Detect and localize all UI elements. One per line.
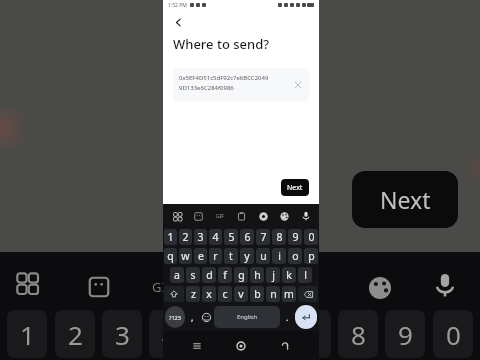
button[interactable]: f bbox=[218, 267, 232, 283]
button[interactable]: Voice input bbox=[298, 208, 314, 224]
button[interactable]: 8 bbox=[272, 229, 286, 245]
staticText: y bbox=[244, 249, 250, 263]
button[interactable]: g bbox=[234, 267, 248, 283]
staticText: r bbox=[213, 249, 218, 263]
button[interactable]: Home bbox=[231, 336, 251, 356]
staticText: n bbox=[270, 287, 277, 301]
staticText: 7 bbox=[260, 230, 267, 244]
button[interactable]: GIF bbox=[212, 208, 228, 224]
staticText: c bbox=[222, 287, 228, 301]
button[interactable]: Apps bbox=[169, 208, 185, 224]
button[interactable]: p bbox=[304, 248, 318, 264]
staticText: o bbox=[292, 249, 299, 263]
staticText: ?123 bbox=[169, 314, 181, 321]
button[interactable]: 6 bbox=[240, 229, 254, 245]
button[interactable]: t bbox=[224, 248, 238, 264]
staticText: 0 bbox=[446, 317, 461, 352]
button[interactable]: l bbox=[298, 267, 312, 283]
staticText: j bbox=[272, 268, 275, 282]
staticText: g bbox=[238, 268, 245, 282]
staticText: 3 bbox=[197, 230, 204, 244]
staticText: 7 bbox=[304, 317, 319, 352]
button[interactable]: Clear bbox=[292, 79, 304, 91]
button[interactable]: Backspace bbox=[298, 286, 318, 302]
button[interactable]: Clipboard bbox=[233, 208, 249, 224]
button[interactable]: 9 bbox=[288, 229, 302, 245]
button[interactable]: e bbox=[194, 248, 207, 264]
button[interactable]: Next bbox=[281, 179, 309, 196]
staticText: s bbox=[190, 268, 196, 282]
staticText: 1 bbox=[20, 317, 35, 352]
staticText: 5 bbox=[209, 317, 224, 352]
button[interactable]: Recents bbox=[187, 336, 207, 356]
staticText: x bbox=[206, 287, 212, 301]
staticText: t bbox=[229, 249, 233, 263]
staticText: 1 bbox=[167, 230, 174, 244]
button[interactable]: a bbox=[170, 267, 184, 283]
staticText: a bbox=[174, 268, 180, 282]
button[interactable]: 2 bbox=[179, 229, 192, 245]
staticText: 9 bbox=[398, 317, 413, 352]
button[interactable]: v bbox=[234, 286, 248, 302]
button[interactable]: 1 bbox=[164, 229, 177, 245]
staticText: 4 bbox=[212, 230, 219, 244]
staticText: d bbox=[206, 268, 213, 282]
button[interactable]: Period bbox=[282, 306, 293, 328]
button[interactable]: r bbox=[209, 248, 222, 264]
staticText: f bbox=[223, 268, 227, 282]
button[interactable]: b bbox=[250, 286, 264, 302]
button[interactable]: y bbox=[240, 248, 254, 264]
button[interactable]: ?123 bbox=[165, 306, 185, 328]
button[interactable]: 5 bbox=[224, 229, 238, 245]
button[interactable]: Comma bbox=[187, 306, 198, 328]
button[interactable]: Enter bbox=[295, 305, 317, 329]
staticText: GIF bbox=[152, 278, 173, 296]
staticText: k bbox=[286, 268, 292, 282]
button[interactable]: Stickers bbox=[190, 208, 206, 224]
button[interactable]: 0x5EF4D51c5dF92c7e6BCC2049 bbox=[173, 68, 309, 102]
button[interactable]: o bbox=[288, 248, 302, 264]
button[interactable]: Themes bbox=[276, 208, 292, 224]
button[interactable]: Back bbox=[170, 14, 186, 30]
button[interactable]: x bbox=[202, 286, 216, 302]
button[interactable]: h bbox=[250, 267, 264, 283]
staticText: i bbox=[278, 249, 281, 263]
button[interactable]: j bbox=[266, 267, 280, 283]
button[interactable]: c bbox=[218, 286, 232, 302]
button[interactable]: z bbox=[186, 286, 200, 302]
staticText: 5 bbox=[228, 230, 235, 244]
button[interactable]: m bbox=[282, 286, 296, 302]
button[interactable]: n bbox=[266, 286, 280, 302]
staticText: w bbox=[181, 249, 190, 263]
staticText: . bbox=[286, 311, 289, 323]
staticText: 1:52 PM bbox=[168, 2, 187, 9]
staticText: z bbox=[191, 287, 196, 301]
button[interactable]: 4 bbox=[209, 229, 222, 245]
button[interactable]: Settings bbox=[255, 208, 271, 224]
button[interactable]: i bbox=[272, 248, 286, 264]
button[interactable]: Shift bbox=[164, 286, 184, 302]
button[interactable]: English bbox=[214, 306, 280, 328]
staticText: b bbox=[254, 287, 261, 301]
staticText: Next bbox=[380, 184, 431, 215]
staticText: l bbox=[304, 268, 307, 282]
staticText: p bbox=[308, 249, 315, 263]
button[interactable]: 7 bbox=[256, 229, 270, 245]
staticText: 8 bbox=[351, 317, 366, 352]
button[interactable]: Back bbox=[275, 336, 295, 356]
staticText: m bbox=[284, 287, 294, 301]
button[interactable]: 0 bbox=[304, 229, 318, 245]
staticText: Next bbox=[287, 183, 303, 193]
button[interactable]: u bbox=[256, 248, 270, 264]
staticText: 2 bbox=[68, 317, 83, 352]
button[interactable]: q bbox=[164, 248, 177, 264]
button[interactable]: s bbox=[186, 267, 200, 283]
staticText: GIF bbox=[216, 213, 224, 220]
button[interactable]: d bbox=[202, 267, 216, 283]
staticText: 6 bbox=[244, 230, 251, 244]
button[interactable]: 3 bbox=[194, 229, 207, 245]
staticText: e bbox=[198, 249, 204, 263]
button[interactable]: k bbox=[282, 267, 296, 283]
button[interactable]: w bbox=[179, 248, 192, 264]
button[interactable]: Emoji bbox=[200, 306, 212, 328]
